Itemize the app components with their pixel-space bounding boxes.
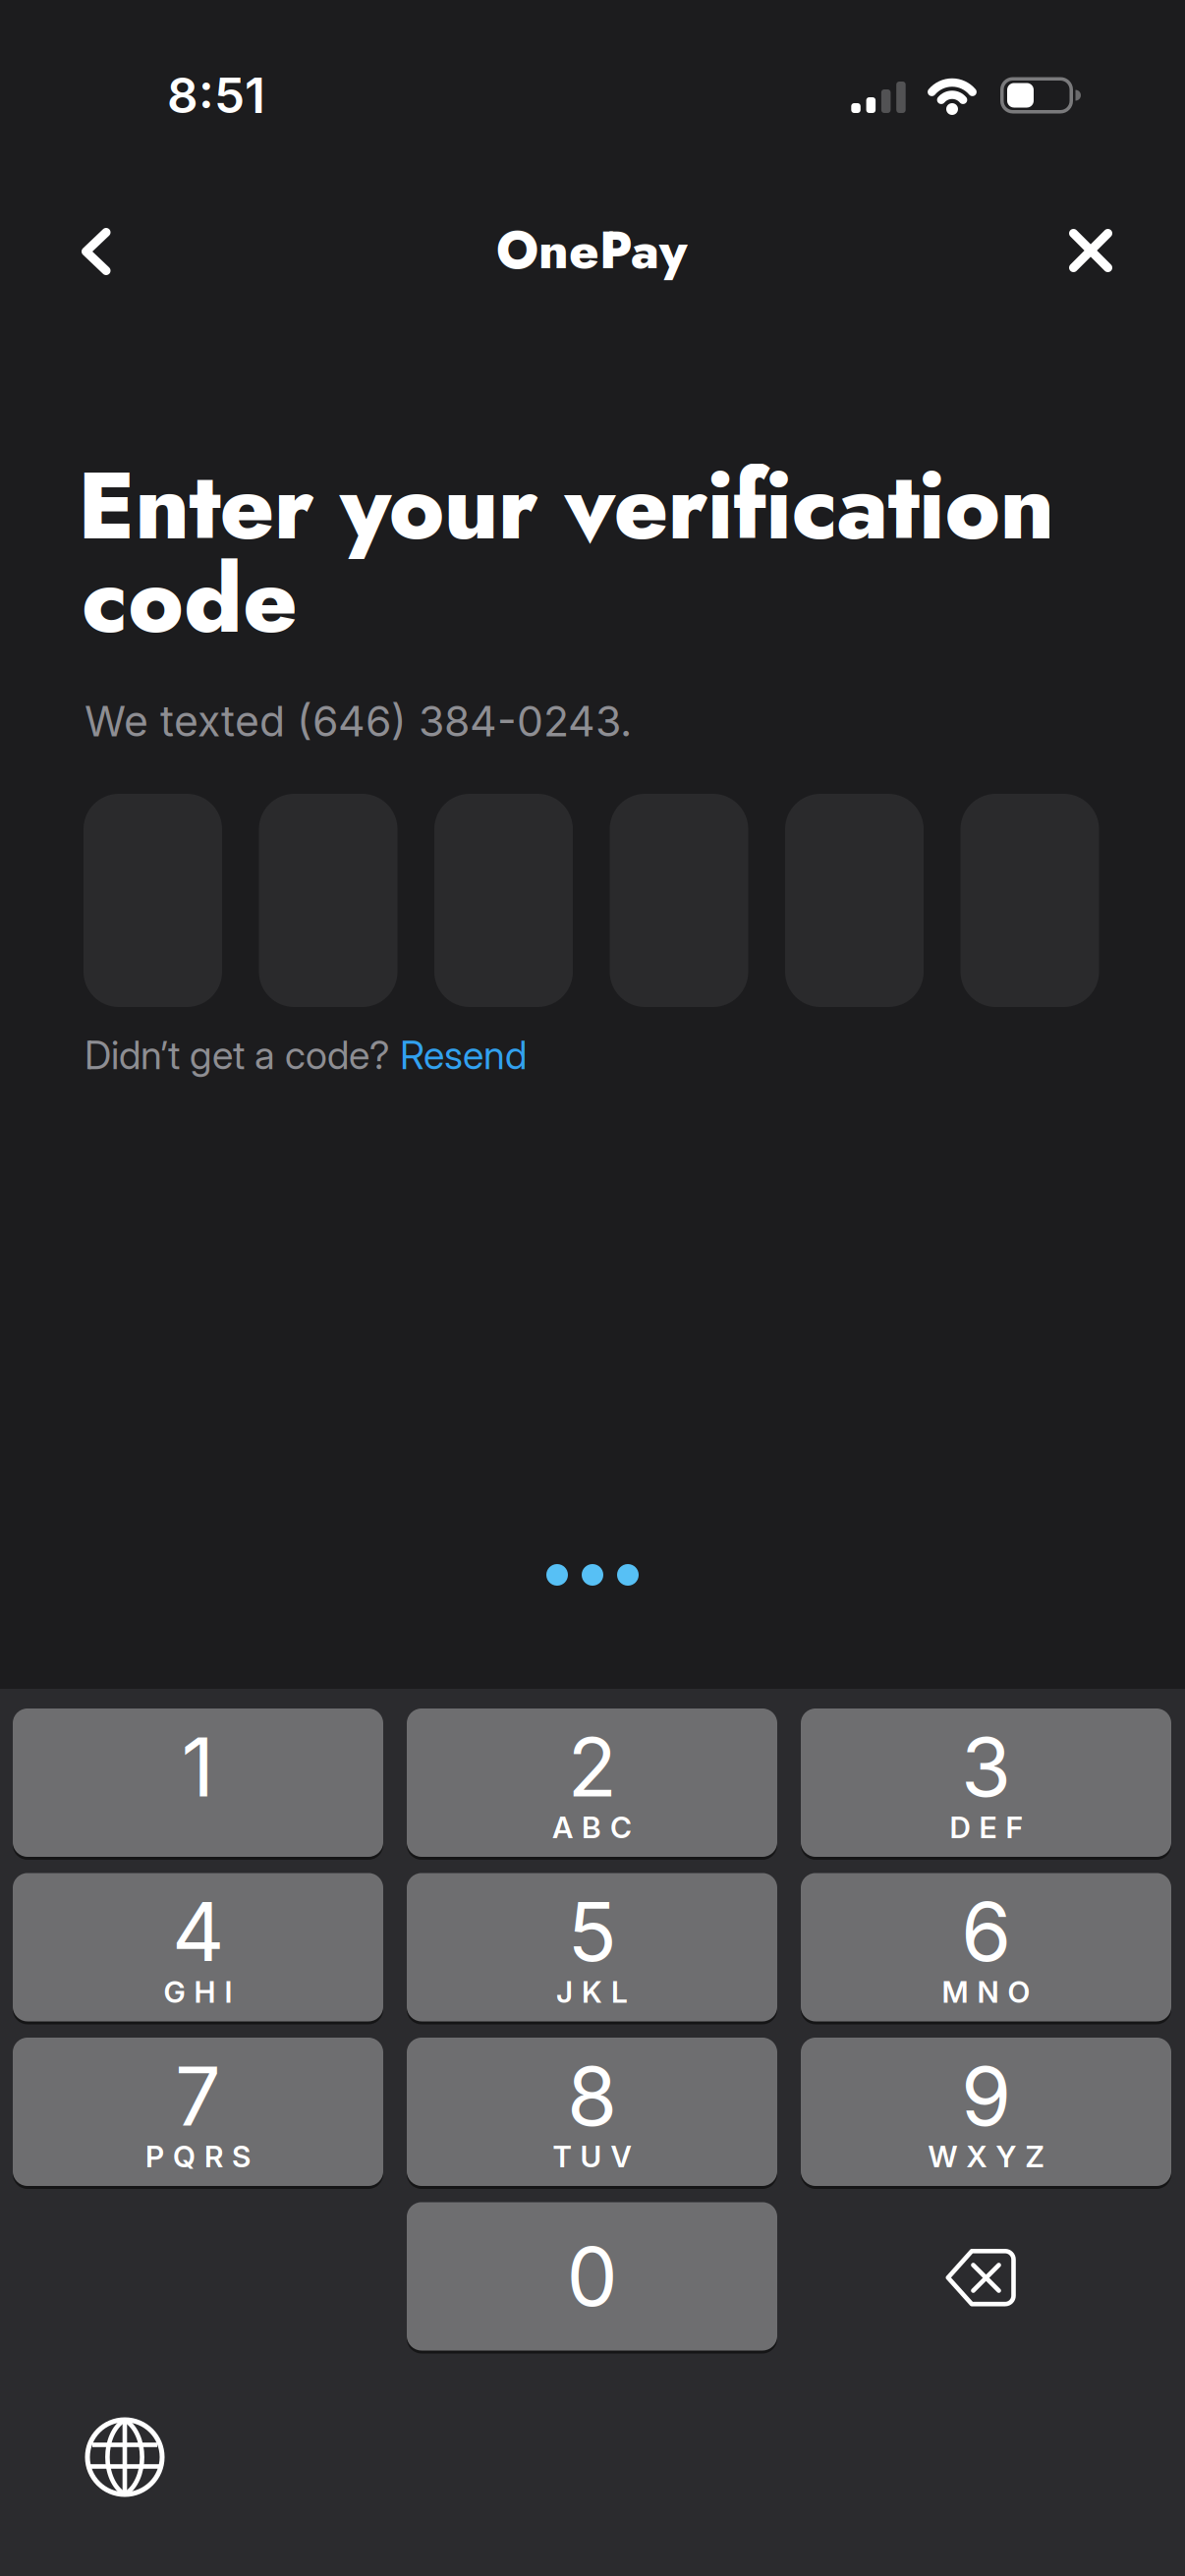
button[interactable]: 9 bbox=[801, 2036, 1171, 2187]
staticText: PQRS bbox=[145, 2139, 251, 2174]
staticText: code bbox=[82, 532, 298, 666]
staticText: MNO bbox=[942, 1974, 1030, 2010]
button[interactable]: Change keyboard bbox=[71, 2403, 179, 2511]
button[interactable]: Close bbox=[1051, 211, 1130, 290]
button[interactable]: 1 bbox=[13, 1707, 383, 1858]
staticText: Resend bbox=[400, 1032, 527, 1079]
button[interactable]: 2 bbox=[407, 1707, 777, 1858]
staticText: Enter your verification bbox=[78, 439, 1055, 573]
button[interactable]: Verification code entry bbox=[84, 794, 1099, 1007]
staticText: 8:51 bbox=[167, 66, 265, 125]
button[interactable]: 3 bbox=[801, 1707, 1171, 1858]
staticText: DEF bbox=[950, 1810, 1022, 1845]
staticText: 3 bbox=[961, 1718, 1011, 1816]
button[interactable]: 0 bbox=[407, 2201, 777, 2352]
staticText: GHI bbox=[164, 1974, 232, 2010]
staticText: WXYZ bbox=[928, 2139, 1044, 2174]
staticText: We texted (646) 384-0243. bbox=[85, 696, 632, 746]
button[interactable]: 4 bbox=[13, 1872, 383, 2023]
staticText: 5 bbox=[567, 1882, 617, 1981]
staticText: TUV bbox=[553, 2139, 631, 2174]
staticText: 4 bbox=[172, 1882, 224, 1981]
staticText: Didn’t get a code? bbox=[85, 1032, 400, 1079]
staticText: JKL bbox=[556, 1974, 628, 2010]
staticText: OnePay bbox=[496, 214, 687, 287]
staticText: ABC bbox=[552, 1810, 632, 1845]
button[interactable]: 8 bbox=[407, 2036, 777, 2187]
button[interactable]: 7 bbox=[13, 2036, 383, 2187]
staticText: 1 bbox=[181, 1718, 215, 1816]
staticText: 0 bbox=[566, 2227, 618, 2325]
staticText: 9 bbox=[961, 2047, 1011, 2145]
button[interactable]: Resend bbox=[400, 1032, 527, 1079]
button[interactable]: 6 bbox=[801, 1872, 1171, 2023]
staticText: 8 bbox=[567, 2047, 617, 2145]
staticText: 2 bbox=[567, 1718, 617, 1816]
button[interactable]: Back bbox=[57, 212, 136, 291]
staticText: 7 bbox=[175, 2047, 221, 2145]
button[interactable]: Delete bbox=[912, 2219, 1050, 2337]
button[interactable]: 5 bbox=[407, 1872, 777, 2023]
staticText: 6 bbox=[961, 1882, 1011, 1981]
